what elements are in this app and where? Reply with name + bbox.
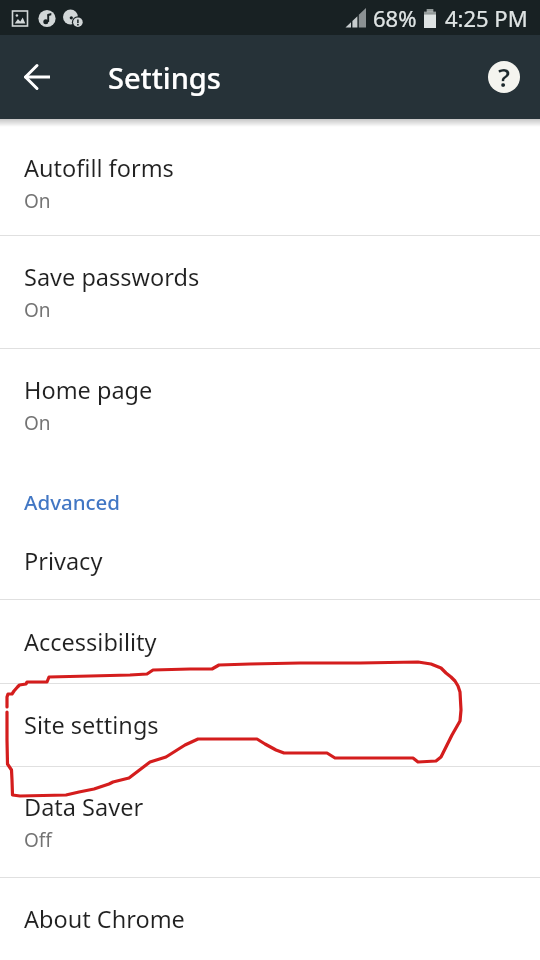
staticText: 68%: [373, 3, 417, 33]
staticText: Accessibility: [24, 626, 157, 658]
staticText: ?: [498, 59, 510, 94]
staticText: Advanced: [24, 488, 121, 516]
staticText: On: [24, 297, 51, 323]
staticText: Privacy: [24, 545, 103, 577]
button[interactable]: Back: [12, 51, 64, 103]
button[interactable]: Data Saver: [0, 767, 540, 877]
staticText: About Chrome: [24, 903, 185, 935]
staticText: Off: [24, 827, 52, 853]
button[interactable]: Site settings: [0, 684, 540, 766]
button[interactable]: Help: [478, 51, 530, 103]
staticText: Autofill forms: [24, 152, 174, 184]
staticText: Data Saver: [24, 791, 144, 823]
staticText: On: [24, 188, 51, 214]
button[interactable]: Privacy: [0, 522, 540, 599]
staticText: Settings: [108, 58, 221, 97]
button[interactable]: Home page: [0, 349, 540, 461]
button[interactable]: Accessibility: [0, 600, 540, 683]
staticText: 4:25 PM: [445, 3, 528, 33]
button[interactable]: Autofill forms: [0, 127, 540, 235]
staticText: Site settings: [24, 709, 159, 741]
staticText: Home page: [24, 374, 153, 406]
staticText: On: [24, 410, 51, 436]
button[interactable]: About Chrome: [0, 878, 540, 960]
staticText: Save passwords: [24, 261, 200, 293]
button[interactable]: Save passwords: [0, 236, 540, 348]
